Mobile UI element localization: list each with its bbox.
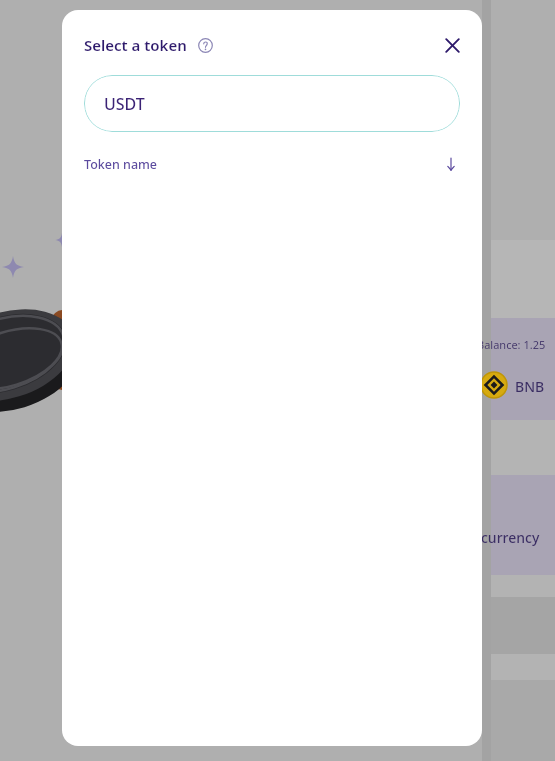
staticText: Select a token (84, 35, 187, 55)
staticText: Token name (84, 156, 158, 173)
button[interactable]: USDT (84, 75, 460, 132)
button[interactable]: Close (438, 31, 466, 59)
other: Sort (442, 155, 460, 173)
button[interactable]: Token name (84, 151, 460, 177)
button[interactable]: Help (195, 35, 215, 55)
staticText: USDT (104, 93, 145, 115)
staticText: currency (481, 528, 540, 547)
staticText: Balance: 1.25 (477, 337, 546, 352)
staticText: BNB (515, 377, 545, 396)
